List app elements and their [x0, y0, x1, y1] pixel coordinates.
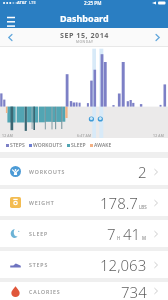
staticText: 12 AM — [153, 133, 165, 138]
staticText: AT&T — [17, 0, 27, 6]
staticText: AWAKE — [94, 142, 112, 149]
button[interactable]: WEIGHT — [0, 189, 168, 216]
staticText: STEPS — [10, 142, 25, 149]
staticText: 12,063 — [100, 255, 147, 275]
staticText: CALORIES — [29, 288, 61, 295]
staticText: 2:25 PM — [84, 0, 102, 6]
staticText: H — [117, 235, 121, 241]
button[interactable]: WORKOUTS — [0, 158, 168, 185]
button[interactable]: SLEEP — [0, 220, 168, 247]
button[interactable]: Previous day — [3, 30, 18, 45]
staticText: WEIGHT — [29, 199, 55, 206]
staticText: 2 — [138, 162, 147, 182]
staticText: LTE — [29, 0, 36, 6]
staticText: 178.7 — [100, 193, 138, 213]
button[interactable]: Next day — [150, 30, 165, 45]
staticText: WORKOUTS — [29, 168, 66, 175]
button[interactable]: Menu — [3, 11, 18, 26]
button[interactable]: STEPS — [0, 251, 168, 278]
staticText: SLEEP — [29, 230, 49, 237]
staticText: 41 — [123, 224, 141, 244]
staticText: MONDAY — [76, 39, 94, 43]
staticText: 12 AM — [2, 133, 14, 138]
staticText: 6:47 AM — [77, 133, 92, 138]
staticText: 7 — [107, 224, 116, 244]
staticText: WORKOUTS — [33, 142, 63, 149]
staticText: Dashboard — [60, 12, 109, 24]
staticText: SLEEP — [71, 142, 86, 149]
button[interactable]: CALORIES — [0, 282, 168, 300]
staticText: LBS — [139, 204, 147, 210]
staticText: STEPS — [29, 261, 49, 268]
staticText: 734 — [121, 282, 147, 300]
staticText: SEP 15, 2014 — [60, 30, 109, 40]
staticText: M — [142, 235, 147, 241]
